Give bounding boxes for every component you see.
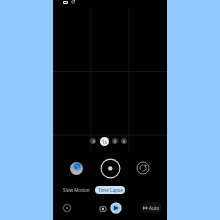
button[interactable]: Shutter: [100, 158, 121, 179]
button[interactable]: Settings: [62, 203, 72, 213]
button[interactable]: 2: [112, 138, 118, 144]
staticText: 1x: [102, 139, 107, 145]
staticText: Time Lapse: [98, 187, 123, 193]
button[interactable]: Video mode: [110, 202, 122, 214]
button[interactable]: 5: [121, 138, 127, 144]
button[interactable]: .5: [90, 138, 96, 144]
staticText: 5: [123, 139, 125, 143]
button[interactable]: Switch camera: [136, 161, 150, 175]
button[interactable]: Capture format: [63, 1, 68, 4]
button[interactable]: Auto: [141, 202, 162, 213]
staticText: Auto: [149, 205, 160, 211]
staticText: Slow Motion: [63, 187, 90, 193]
button[interactable]: Slow Motion: [62, 186, 91, 194]
staticText: .5: [92, 139, 95, 143]
button[interactable]: Camera settings: [71, 0, 75, 4]
button[interactable]: Gallery: [70, 162, 83, 175]
button[interactable]: Time Lapse: [95, 186, 125, 194]
button[interactable]: Photo mode: [98, 204, 107, 213]
button[interactable]: 1x: [100, 137, 109, 146]
staticText: 2: [114, 139, 116, 143]
